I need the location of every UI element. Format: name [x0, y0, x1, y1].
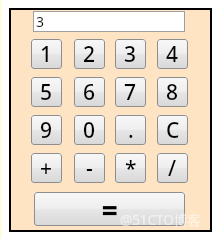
button[interactable]: 3: [33, 11, 185, 32]
staticText: 6: [83, 78, 96, 107]
button[interactable]: -: [74, 153, 105, 183]
button[interactable]: 0: [74, 115, 105, 145]
button[interactable]: 8: [157, 77, 188, 107]
staticText: 0: [83, 116, 96, 145]
button[interactable]: *: [115, 153, 146, 183]
staticText: 2: [83, 40, 96, 69]
button[interactable]: 4: [157, 39, 188, 69]
staticText: @51CTO博客: [120, 211, 201, 229]
button[interactable]: 1: [31, 39, 62, 69]
staticText: +: [40, 154, 53, 183]
staticText: C: [166, 116, 180, 145]
staticText: 3: [36, 12, 45, 31]
staticText: 1: [40, 40, 53, 69]
staticText: /: [168, 154, 177, 183]
button[interactable]: 6: [74, 77, 105, 107]
button[interactable]: +: [31, 153, 62, 183]
staticText: .: [128, 116, 134, 145]
staticText: 4: [166, 40, 179, 69]
staticText: 5: [40, 78, 53, 107]
button[interactable]: 3: [115, 39, 146, 69]
button[interactable]: C: [157, 115, 188, 145]
staticText: 3: [124, 40, 137, 69]
button[interactable]: .: [115, 115, 146, 145]
staticText: 7: [124, 78, 137, 107]
button[interactable]: 9: [31, 115, 62, 145]
button[interactable]: 7: [115, 77, 146, 107]
staticText: 9: [40, 116, 53, 145]
staticText: -: [86, 154, 93, 183]
button[interactable]: /: [157, 153, 188, 183]
staticText: 8: [166, 78, 179, 107]
button[interactable]: 5: [31, 77, 62, 107]
staticText: *: [125, 154, 137, 183]
button[interactable]: 2: [74, 39, 105, 69]
button[interactable]: [34, 192, 185, 226]
